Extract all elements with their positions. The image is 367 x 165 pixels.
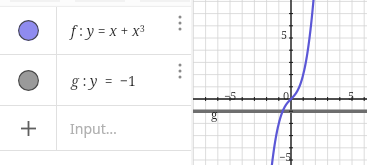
button[interactable]: Toggle visibility <box>0 55 56 105</box>
button[interactable]: Graphics view <box>193 0 367 165</box>
staticText: g <box>211 106 218 122</box>
staticText: f : y = x + x3 <box>71 21 145 40</box>
staticText: 0 <box>283 88 290 103</box>
staticText: g : y = −1 <box>71 71 136 90</box>
staticText: 5 <box>348 88 355 103</box>
staticText: Input… <box>70 119 117 138</box>
button[interactable]: Toggle visibility <box>0 55 191 105</box>
staticText: −5 <box>224 88 237 103</box>
button[interactable]: More options <box>169 7 191 54</box>
button[interactable]: Add input <box>0 106 191 150</box>
button[interactable]: Toggle visibility <box>0 7 56 54</box>
staticText: −5 <box>279 149 292 164</box>
button[interactable]: More options <box>169 55 191 105</box>
other: Add input <box>0 106 56 150</box>
staticText: 5 <box>281 27 288 42</box>
button[interactable]: Toggle visibility <box>0 7 191 54</box>
